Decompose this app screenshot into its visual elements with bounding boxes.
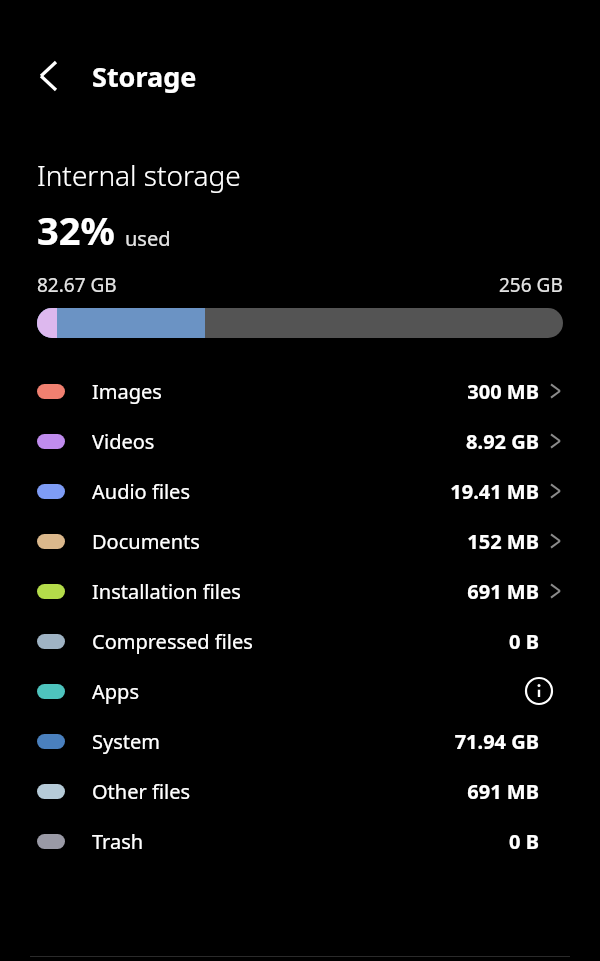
- staticText: 0 B: [509, 628, 539, 655]
- button[interactable]: Documents: [0, 516, 600, 566]
- staticText: Internal storage: [37, 156, 241, 194]
- button[interactable]: Other files: [0, 766, 600, 816]
- staticText: Other files: [92, 778, 190, 805]
- staticText: 8.92 GB: [466, 428, 539, 455]
- staticText: 82.67 GB: [37, 272, 117, 298]
- staticText: System: [92, 728, 160, 755]
- staticText: Apps: [92, 678, 139, 705]
- staticText: used: [125, 225, 171, 252]
- button[interactable]: About apps: [524, 676, 554, 706]
- staticText: 71.94 GB: [454, 728, 539, 755]
- staticText: Documents: [92, 528, 200, 555]
- staticText: Installation files: [92, 578, 241, 605]
- button[interactable]: Installation files: [0, 566, 600, 616]
- staticText: 32%: [37, 204, 115, 256]
- staticText: 691 MB: [467, 778, 539, 805]
- button[interactable]: Compressed files: [0, 616, 600, 666]
- staticText: 256 GB: [499, 272, 563, 298]
- button[interactable]: Images: [0, 366, 600, 416]
- button[interactable]: Trash: [0, 816, 600, 866]
- button[interactable]: System: [0, 716, 600, 766]
- staticText: 691 MB: [467, 578, 539, 605]
- staticText: Images: [92, 378, 162, 405]
- staticText: Storage: [92, 58, 197, 95]
- staticText: 152 MB: [467, 528, 539, 555]
- staticText: Videos: [92, 428, 155, 455]
- staticText: Compressed files: [92, 628, 253, 655]
- staticText: 300 MB: [467, 378, 539, 405]
- staticText: 0 B: [509, 828, 539, 855]
- button[interactable]: Back: [22, 54, 66, 98]
- button[interactable]: Apps: [0, 666, 600, 716]
- staticText: Trash: [92, 828, 144, 855]
- staticText: 19.41 MB: [450, 478, 539, 505]
- staticText: Audio files: [92, 478, 190, 505]
- button[interactable]: Audio files: [0, 466, 600, 516]
- button[interactable]: Videos: [0, 416, 600, 466]
